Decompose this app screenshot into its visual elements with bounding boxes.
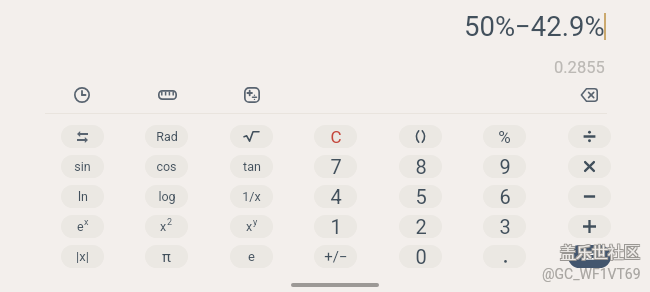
staticText: @GC_WF1VT69 [542, 266, 641, 282]
button[interactable]: x [145, 215, 188, 238]
button[interactable]: Multiply [568, 155, 611, 178]
button[interactable]: 1/x [230, 185, 273, 208]
button[interactable]: |x| [61, 245, 104, 268]
button[interactable]: History [69, 82, 95, 108]
staticText: 9 [499, 155, 511, 178]
button[interactable]: 1 [314, 215, 357, 238]
staticText: x [84, 217, 89, 228]
staticText: 盖乐世社区 [560, 243, 640, 263]
staticText: ln [78, 189, 88, 204]
button[interactable]: Decimal point [483, 245, 526, 268]
staticText: 7 [330, 155, 342, 178]
button[interactable]: log [145, 185, 188, 208]
staticText: 8 [415, 155, 427, 178]
staticText: π [162, 248, 171, 266]
staticText: sin [74, 159, 91, 174]
staticText: 1/x [242, 189, 261, 204]
staticText: % [498, 127, 511, 147]
staticText: 0 [415, 245, 427, 268]
staticText: tan [243, 159, 261, 174]
button[interactable]: sin [61, 155, 104, 178]
button[interactable]: C [314, 125, 357, 148]
staticText: 2 [167, 217, 173, 228]
staticText: 盖乐世社区 [560, 244, 640, 264]
staticText: 50%−42.9% [464, 10, 605, 42]
staticText: 2 [415, 215, 427, 238]
button[interactable]: cos [145, 155, 188, 178]
button[interactable]: ln [61, 185, 104, 208]
button[interactable]: 5 [399, 185, 442, 208]
button[interactable]: 6 [483, 185, 526, 208]
button[interactable]: x [230, 215, 273, 238]
staticText: e [248, 249, 255, 264]
button[interactable]: 7 [314, 155, 357, 178]
button[interactable]: Square root [230, 125, 273, 148]
button[interactable]: 3 [483, 215, 526, 238]
staticText: 盖乐世社区 [561, 243, 641, 263]
staticText: C [330, 127, 342, 147]
button[interactable]: e [61, 215, 104, 238]
button[interactable]: e [230, 245, 273, 268]
button[interactable]: Backspace [576, 82, 602, 108]
button[interactable]: Equals [568, 245, 611, 268]
staticText: 5 [415, 185, 427, 208]
button[interactable]: Rad [145, 125, 188, 148]
staticText: 盖乐世社区 [559, 243, 639, 263]
staticText: x [246, 219, 253, 234]
button[interactable]: π [145, 245, 188, 268]
staticText: 盖乐世社区 [560, 242, 640, 262]
staticText: 3 [499, 215, 511, 238]
staticText: 1 [330, 215, 342, 238]
button[interactable]: Swap [61, 125, 104, 148]
staticText: Rad [156, 129, 178, 144]
staticText: 盖乐世社区 [559, 244, 639, 264]
button[interactable]: +/− [314, 245, 357, 268]
button[interactable]: Divide [568, 125, 611, 148]
button[interactable]: 4 [314, 185, 357, 208]
staticText: 盖乐世社区 [561, 242, 641, 262]
staticText: 盖乐世社区 [561, 244, 641, 264]
button[interactable]: tan [230, 155, 273, 178]
button[interactable]: 8 [399, 155, 442, 178]
button[interactable]: 0 [399, 245, 442, 268]
button[interactable]: Plus [568, 215, 611, 238]
staticText: 4 [330, 185, 342, 208]
staticText: cos [156, 159, 177, 174]
button[interactable]: Minus [568, 185, 611, 208]
button[interactable]: Calculator modes [239, 82, 265, 108]
staticText: 6 [499, 185, 511, 208]
button[interactable]: Unit converter [154, 82, 180, 108]
staticText: y [253, 217, 258, 228]
staticText: |x| [76, 249, 89, 264]
button[interactable]: % [483, 125, 526, 148]
button[interactable]: Parentheses [399, 125, 442, 148]
button[interactable]: 9 [483, 155, 526, 178]
staticText: 盖乐世社区 [559, 242, 639, 262]
staticText: log [158, 189, 176, 204]
staticText: e [77, 219, 84, 234]
button[interactable]: 2 [399, 215, 442, 238]
staticText: +/− [324, 248, 348, 266]
staticText: x [160, 219, 167, 234]
staticText: 0.2855 [554, 58, 605, 77]
